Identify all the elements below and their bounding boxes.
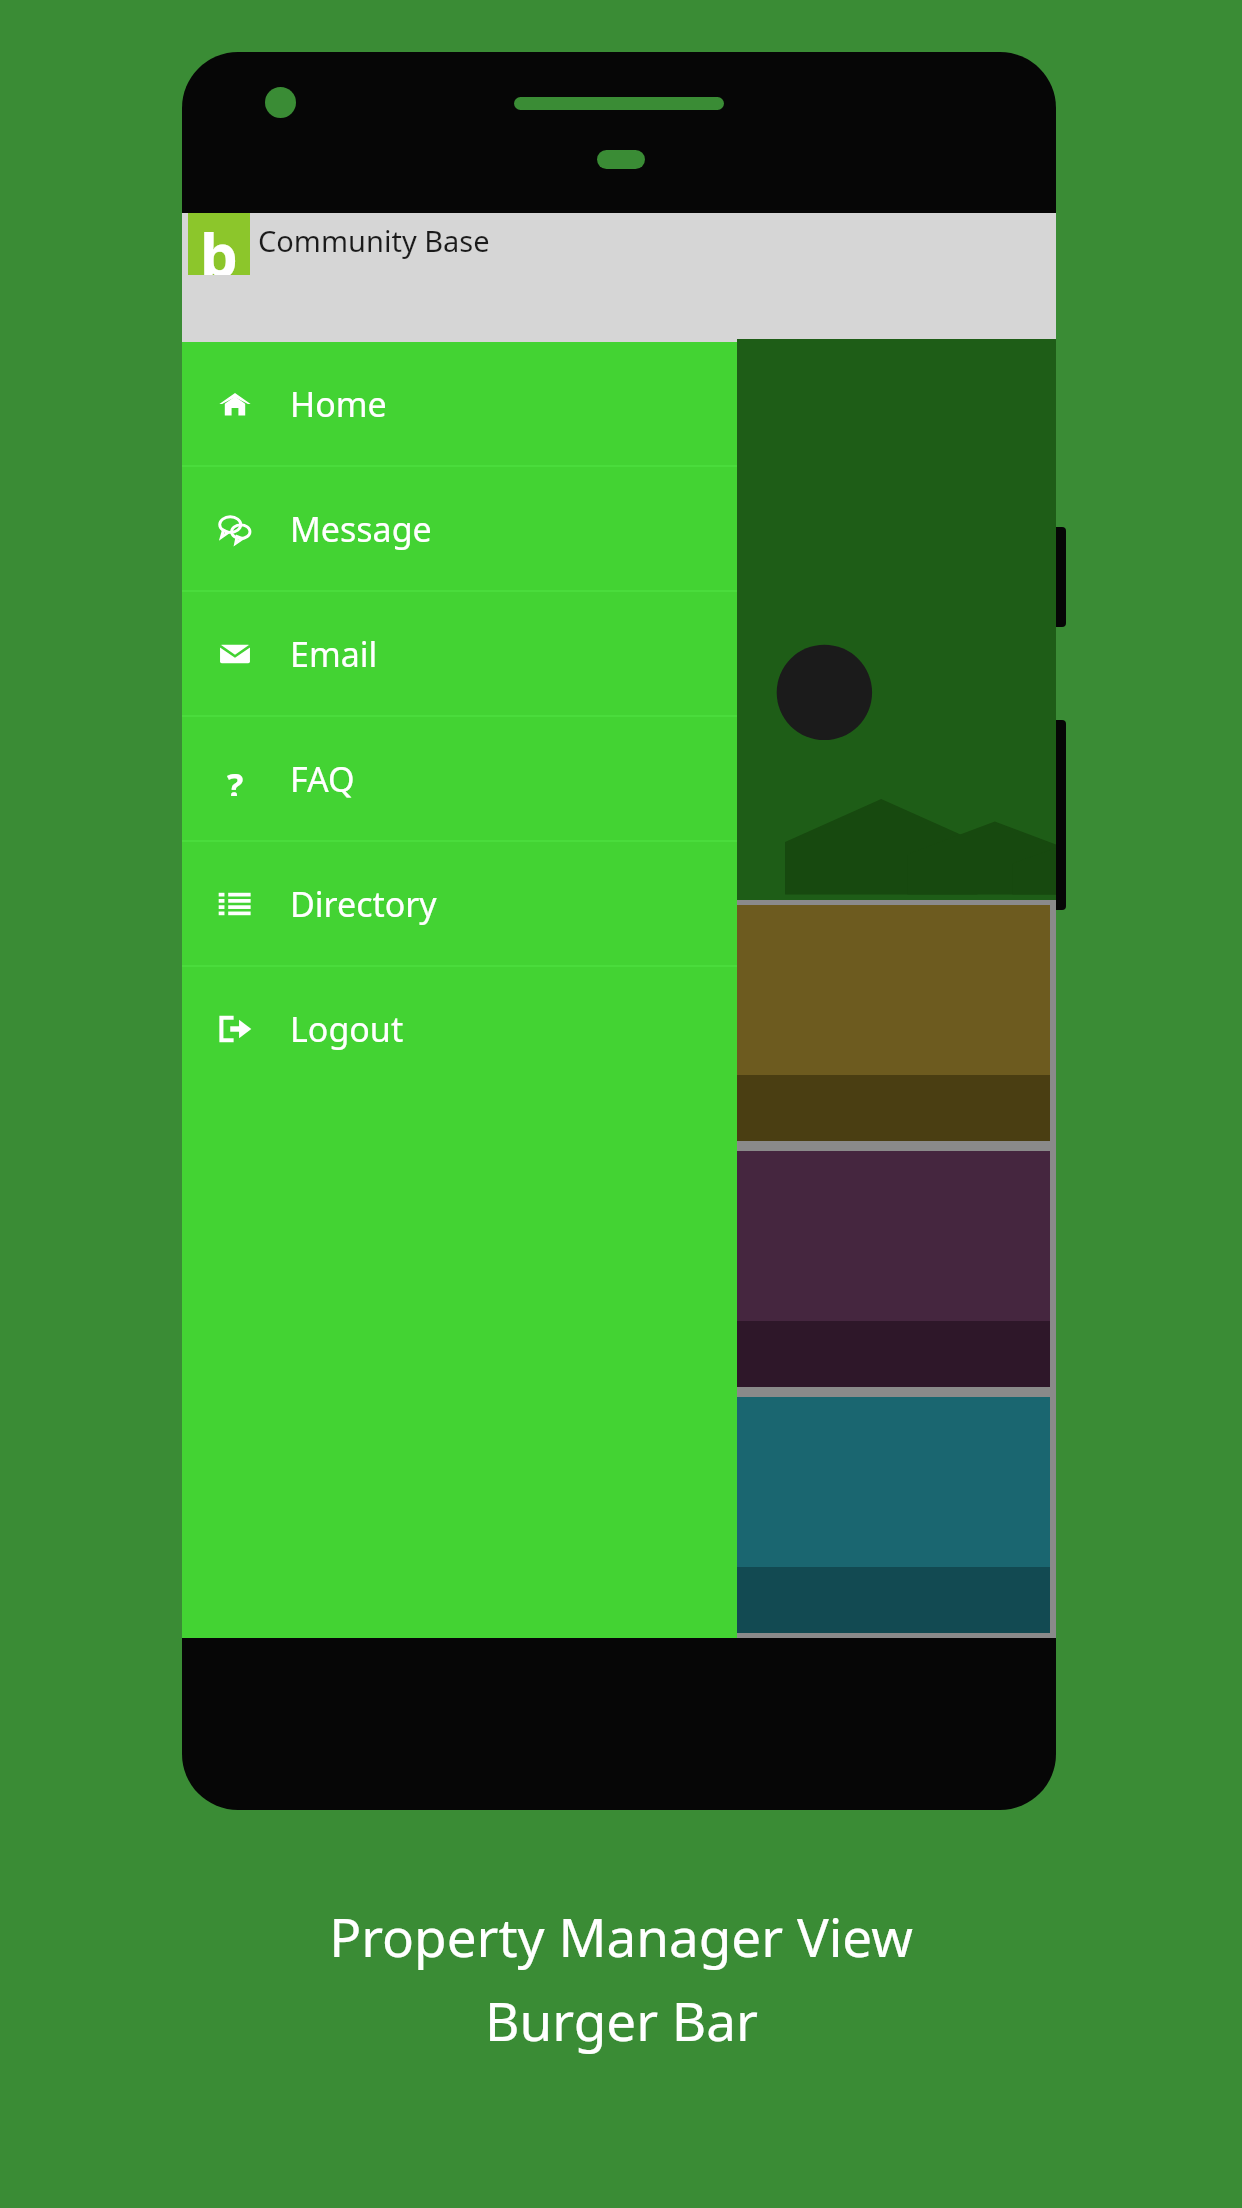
staticText: Directory: [290, 881, 437, 927]
button[interactable]: [188, 1397, 1050, 1633]
button[interactable]: [188, 1151, 1050, 1387]
other: Directory: [218, 887, 252, 921]
button[interactable]: FAQ: [182, 717, 737, 840]
other: Home: [218, 387, 252, 421]
other: FAQ: [218, 762, 252, 796]
staticText: Logout: [290, 1006, 404, 1052]
button[interactable]: Email: [182, 592, 737, 715]
staticText: FAQ: [290, 756, 355, 802]
staticText: Email: [290, 631, 378, 677]
staticText: Property Manager View: [329, 1900, 913, 1972]
button[interactable]: Logout: [182, 967, 737, 1090]
button[interactable]: Message: [182, 467, 737, 590]
staticText: Message: [290, 506, 432, 552]
button[interactable]: Directory: [182, 842, 737, 965]
staticText: ?: [227, 762, 244, 796]
other: Message: [218, 512, 252, 546]
staticText: Home: [290, 381, 387, 427]
staticText: Community Base: [258, 221, 490, 260]
button[interactable]: Home: [182, 342, 737, 465]
other: Email: [218, 637, 252, 671]
button[interactable]: [188, 905, 1050, 1141]
staticText: Burger Bar: [485, 1984, 758, 2056]
other: Logout: [218, 1012, 252, 1046]
staticText: b: [200, 213, 238, 275]
